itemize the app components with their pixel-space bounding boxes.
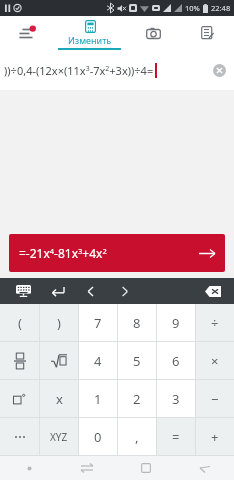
staticText: =-21x4-81x3+4x2 bbox=[19, 245, 107, 261]
staticText: 22:48 bbox=[211, 3, 231, 13]
staticText: + bbox=[211, 428, 219, 446]
button[interactable]: Clear bbox=[213, 64, 226, 77]
button[interactable]: XYZ bbox=[40, 418, 78, 455]
button[interactable]: Left bbox=[74, 278, 108, 304]
button[interactable]: Menu bbox=[0, 456, 58, 480]
button[interactable]: Изменить bbox=[53, 16, 126, 50]
button[interactable]: 3 bbox=[157, 380, 195, 417]
staticText: 9 bbox=[172, 314, 180, 332]
button[interactable]: Enter bbox=[40, 278, 74, 304]
staticText: 5 bbox=[133, 352, 141, 370]
button[interactable]: 8 bbox=[118, 304, 156, 341]
staticText: × bbox=[211, 352, 219, 370]
button[interactable]: Right bbox=[108, 278, 142, 304]
button[interactable]: =-21x4-81x3+4x2 bbox=[9, 234, 225, 272]
button[interactable]: + bbox=[196, 418, 234, 455]
staticText: 7 bbox=[94, 314, 102, 332]
button[interactable]: More bbox=[0, 418, 39, 455]
staticText: 0 bbox=[94, 428, 102, 446]
button[interactable]: ÷ bbox=[196, 304, 234, 341]
staticText: 10% bbox=[185, 3, 200, 13]
button[interactable]: Keyboard bbox=[6, 278, 40, 304]
button[interactable]: × bbox=[196, 342, 234, 379]
staticText: 1 bbox=[94, 390, 102, 408]
staticText: XYZ bbox=[50, 430, 68, 444]
button[interactable]: 5 bbox=[118, 342, 156, 379]
button[interactable]: 9 bbox=[157, 304, 195, 341]
button[interactable]: 4 bbox=[79, 342, 117, 379]
button[interactable]: History bbox=[0, 16, 53, 50]
button[interactable]: − bbox=[196, 380, 234, 417]
button[interactable]: ) bbox=[40, 304, 78, 341]
staticText: ÷ bbox=[211, 314, 219, 332]
staticText: ( bbox=[18, 314, 22, 332]
button[interactable]: 1 bbox=[79, 380, 117, 417]
staticText: 8 bbox=[133, 314, 141, 332]
button[interactable]: = bbox=[157, 418, 195, 455]
button[interactable]: 2 bbox=[118, 380, 156, 417]
button[interactable]: Fraction bbox=[0, 342, 39, 379]
staticText: Изменить bbox=[68, 34, 112, 46]
button[interactable]: ( bbox=[0, 304, 39, 341]
staticText: x bbox=[56, 390, 63, 408]
staticText: ) bbox=[57, 314, 61, 332]
button[interactable]: Notebook bbox=[180, 16, 234, 50]
button[interactable]: 7 bbox=[79, 304, 117, 341]
other: Next bbox=[199, 248, 215, 259]
staticText: 4 bbox=[94, 352, 102, 370]
staticText: − bbox=[211, 390, 219, 408]
button[interactable]: , bbox=[118, 418, 156, 455]
button[interactable]: Backspace bbox=[198, 278, 228, 304]
button[interactable]: x bbox=[40, 380, 78, 417]
button[interactable]: Square root bbox=[40, 342, 78, 379]
staticText: = bbox=[172, 428, 180, 446]
button[interactable]: Switch apps bbox=[58, 456, 116, 480]
button[interactable]: Camera bbox=[126, 16, 180, 50]
staticText: 3 bbox=[172, 390, 180, 408]
button[interactable]: Home bbox=[116, 456, 175, 480]
staticText: , bbox=[135, 428, 139, 446]
staticText: 2 bbox=[133, 390, 141, 408]
staticText: 6 bbox=[172, 352, 180, 370]
staticText: ))÷0,4-(12x×(11x3-7x2+3x))÷4= bbox=[4, 63, 154, 78]
button[interactable]: Power bbox=[0, 380, 39, 417]
button[interactable]: 0 bbox=[79, 418, 117, 455]
button[interactable]: 6 bbox=[157, 342, 195, 379]
button[interactable]: Back bbox=[175, 456, 234, 480]
